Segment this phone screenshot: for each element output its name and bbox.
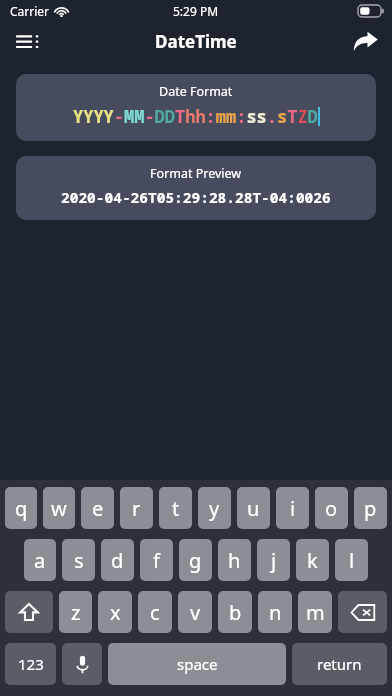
staticText: w — [51, 495, 67, 522]
button[interactable]: t — [159, 487, 192, 529]
staticText: x — [110, 599, 121, 626]
button[interactable]: v — [178, 591, 212, 633]
button[interactable]: g — [179, 539, 212, 581]
staticText: t — [172, 495, 180, 522]
button[interactable]: n — [258, 591, 292, 633]
staticText: Date Format — [159, 83, 233, 100]
staticText: h — [228, 547, 241, 574]
button[interactable]: w — [43, 487, 75, 529]
button[interactable]: f — [140, 539, 173, 581]
button[interactable]: Menu — [4, 22, 50, 60]
button[interactable]: Format Preview — [16, 156, 376, 220]
staticText: r — [132, 495, 141, 522]
staticText: p — [364, 495, 377, 522]
button[interactable]: return — [292, 643, 387, 685]
staticText: g — [189, 547, 202, 574]
staticText: l — [349, 547, 355, 574]
staticText: v — [190, 599, 201, 626]
button[interactable]: q — [5, 487, 37, 529]
staticText: c — [150, 599, 160, 626]
button[interactable]: s — [62, 539, 95, 581]
staticText: u — [247, 495, 260, 522]
button[interactable]: c — [138, 591, 172, 633]
button[interactable]: Shift — [5, 591, 53, 633]
button[interactable]: u — [237, 487, 270, 529]
staticText: Carrier — [10, 3, 50, 19]
staticText: o — [325, 495, 338, 522]
button[interactable]: x — [98, 591, 132, 633]
staticText: 5:29 PM — [173, 3, 219, 19]
staticText: d — [111, 547, 124, 574]
button[interactable]: Share — [342, 22, 388, 60]
button[interactable]: d — [101, 539, 134, 581]
button[interactable]: Date Format — [16, 74, 376, 141]
button[interactable]: k — [296, 539, 329, 581]
staticText: return — [317, 654, 362, 674]
button[interactable]: p — [354, 487, 387, 529]
staticText: s — [74, 547, 84, 574]
staticText: z — [71, 599, 81, 626]
button[interactable]: l — [335, 539, 368, 581]
button[interactable]: a — [24, 539, 56, 581]
staticText: n — [269, 599, 282, 626]
staticText: Format Preview — [150, 165, 242, 182]
button[interactable]: b — [218, 591, 252, 633]
staticText: a — [34, 547, 46, 574]
button[interactable]: z — [59, 591, 92, 633]
button[interactable]: i — [276, 487, 309, 529]
button[interactable]: e — [81, 487, 114, 529]
staticText: i — [290, 495, 296, 522]
staticText: q — [15, 495, 28, 522]
button[interactable]: m — [298, 591, 332, 633]
button[interactable]: Voice input — [62, 643, 102, 685]
staticText: 123 — [18, 654, 44, 674]
staticText: j — [271, 547, 277, 574]
button[interactable]: j — [257, 539, 290, 581]
button[interactable]: o — [315, 487, 348, 529]
button[interactable]: space — [108, 643, 286, 685]
staticText: y — [209, 495, 220, 522]
staticText: YYYY-MM-DDThh:mm:ss.sTZD — [73, 105, 318, 128]
button[interactable]: y — [198, 487, 231, 529]
staticText: 2020-04-26T05:29:28.28T-04:0026 — [61, 187, 331, 207]
button[interactable]: r — [120, 487, 153, 529]
button[interactable]: Backspace — [338, 591, 387, 633]
staticText: b — [229, 599, 242, 626]
staticText: space — [177, 654, 218, 674]
staticText: k — [307, 547, 318, 574]
button[interactable]: h — [218, 539, 251, 581]
button[interactable]: 123 — [5, 643, 56, 685]
staticText: DateTime — [155, 30, 237, 53]
staticText: e — [92, 495, 104, 522]
staticText: m — [306, 599, 325, 626]
staticText: f — [153, 547, 160, 574]
